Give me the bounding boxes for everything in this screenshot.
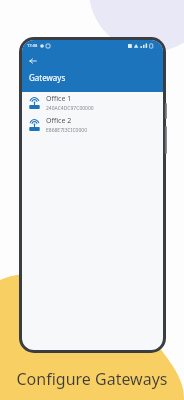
staticText: Configure Gateways	[0, 368, 184, 390]
button[interactable]: Office 2	[22, 114, 163, 136]
staticText: 17:08	[27, 43, 38, 48]
staticText: 240AC4DC97C00000	[46, 105, 94, 112]
button[interactable]: Office 1	[22, 92, 163, 114]
staticText: Office 1	[46, 94, 72, 104]
staticText: Office 2	[46, 116, 72, 126]
staticText: Gateways	[29, 72, 66, 83]
staticText: E868E7I3CIC0000	[46, 127, 88, 134]
button[interactable]: Back	[26, 54, 40, 68]
